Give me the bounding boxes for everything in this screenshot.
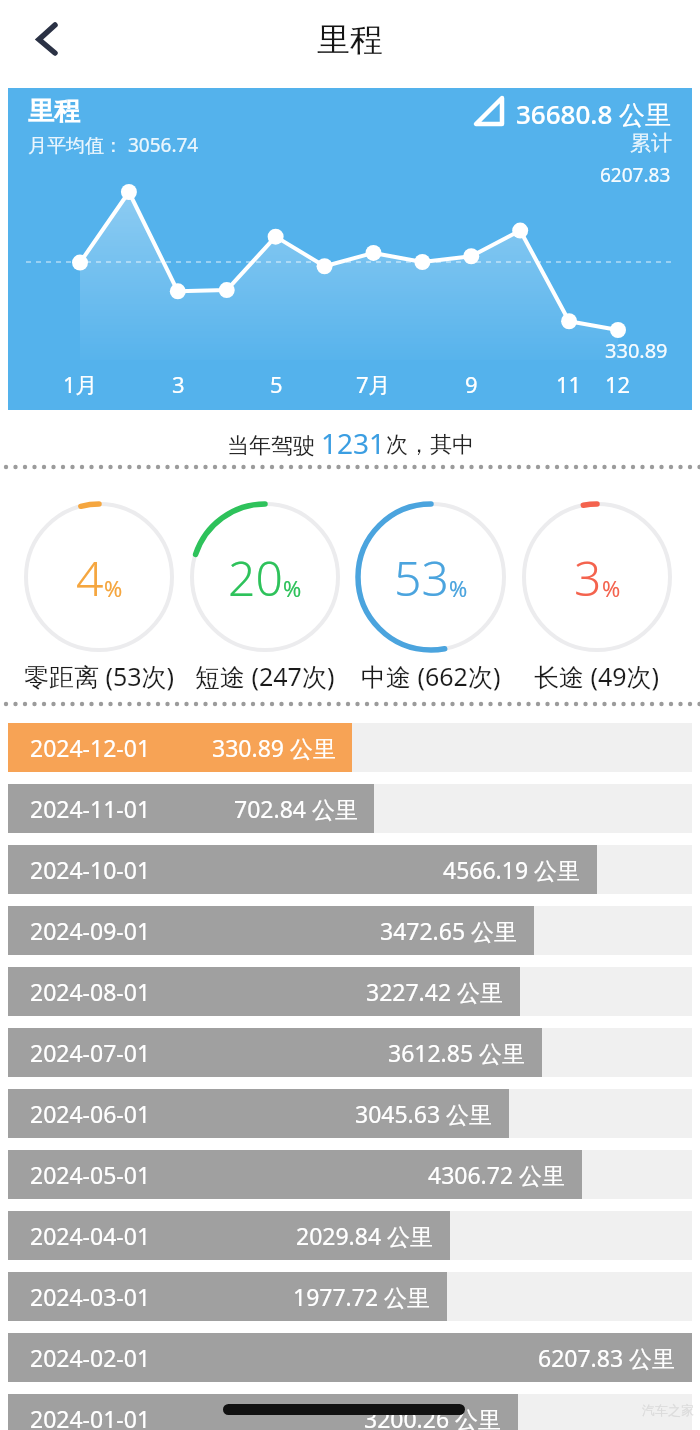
- staticText: 2024-01-01: [30, 1403, 151, 1430]
- staticText: 5: [270, 369, 283, 399]
- staticText: 2024-09-01: [30, 915, 151, 946]
- staticText: 702.84 公里: [234, 793, 358, 824]
- staticText: 汽车之家: [642, 1402, 694, 1418]
- button[interactable]: 2024-03-01: [8, 1272, 447, 1321]
- staticText: 1月: [63, 369, 98, 399]
- staticText: 零距离 (53次): [24, 659, 175, 693]
- staticText: 里程: [0, 19, 700, 61]
- staticText: 4566.19 公里: [443, 854, 581, 885]
- staticText: 2024-06-01: [30, 1098, 151, 1129]
- button[interactable]: 2024-10-01: [8, 845, 597, 894]
- staticText: 3227.42 公里: [366, 976, 504, 1007]
- staticText: 3612.85 公里: [388, 1037, 526, 1068]
- button[interactable]: 2024-06-01: [8, 1089, 509, 1138]
- button[interactable]: 2024-05-01: [8, 1150, 582, 1199]
- staticText: %: [602, 573, 621, 603]
- staticText: 330.89: [605, 337, 668, 364]
- staticText: 当年驾驶: [227, 429, 321, 459]
- staticText: 1977.72 公里: [293, 1281, 431, 1312]
- staticText: 20: [228, 545, 283, 610]
- staticText: 长途 (49次): [534, 659, 660, 693]
- button[interactable]: 里程: [8, 88, 692, 410]
- staticText: 2024-12-01: [30, 732, 151, 763]
- staticText: 2024-07-01: [30, 1037, 151, 1068]
- staticText: 2029.84 公里: [296, 1220, 434, 1251]
- staticText: 9: [465, 369, 478, 399]
- button[interactable]: 53: [353, 499, 509, 655]
- staticText: 中途 (662次): [361, 659, 501, 693]
- button[interactable]: 2024-04-01: [8, 1211, 450, 1260]
- staticText: 4306.72 公里: [428, 1159, 566, 1190]
- staticText: 累计: [630, 130, 672, 156]
- staticText: 2024-08-01: [30, 976, 151, 1007]
- staticText: 次，其中: [386, 431, 474, 459]
- button[interactable]: 2024-08-01: [8, 967, 520, 1016]
- staticText: 3045.63 公里: [355, 1098, 493, 1129]
- staticText: %: [283, 573, 302, 603]
- staticText: 53: [394, 545, 449, 610]
- button[interactable]: 2024-07-01: [8, 1028, 542, 1077]
- staticText: 1231: [321, 424, 386, 462]
- staticText: 2024-10-01: [30, 854, 151, 885]
- staticText: 3: [574, 545, 602, 610]
- staticText: 3472.65 公里: [380, 915, 518, 946]
- staticText: 4: [76, 545, 104, 610]
- staticText: 2024-03-01: [30, 1281, 151, 1312]
- staticText: 6207.83: [600, 162, 671, 188]
- button[interactable]: 4: [21, 499, 177, 655]
- staticText: 36680.8 公里: [516, 96, 672, 132]
- staticText: 2024-11-01: [30, 793, 151, 824]
- staticText: 2024-05-01: [30, 1159, 151, 1190]
- staticText: %: [449, 573, 468, 603]
- staticText: 2024-04-01: [30, 1220, 151, 1251]
- staticText: 3200.26 公里: [364, 1403, 502, 1430]
- button[interactable]: 3: [519, 499, 675, 655]
- staticText: 6207.83 公里: [538, 1342, 676, 1373]
- button[interactable]: 2024-12-01: [8, 723, 352, 772]
- button[interactable]: 2024-02-01: [8, 1333, 692, 1382]
- staticText: 月平均值： 3056.74: [28, 132, 199, 158]
- staticText: 2024-02-01: [30, 1342, 151, 1373]
- button[interactable]: [22, 12, 74, 64]
- staticText: 7月: [356, 369, 391, 399]
- button[interactable]: 20: [187, 499, 343, 655]
- staticText: 11: [556, 369, 582, 399]
- staticText: 短途 (247次): [195, 659, 335, 693]
- button[interactable]: 2024-11-01: [8, 784, 374, 833]
- staticText: 里程: [28, 95, 80, 128]
- button[interactable]: 2024-09-01: [8, 906, 534, 955]
- button[interactable]: 2024-01-01: [8, 1394, 518, 1430]
- staticText: 12: [605, 369, 631, 399]
- staticText: 3: [172, 369, 185, 399]
- staticText: %: [104, 573, 123, 603]
- staticText: 330.89 公里: [212, 732, 336, 763]
